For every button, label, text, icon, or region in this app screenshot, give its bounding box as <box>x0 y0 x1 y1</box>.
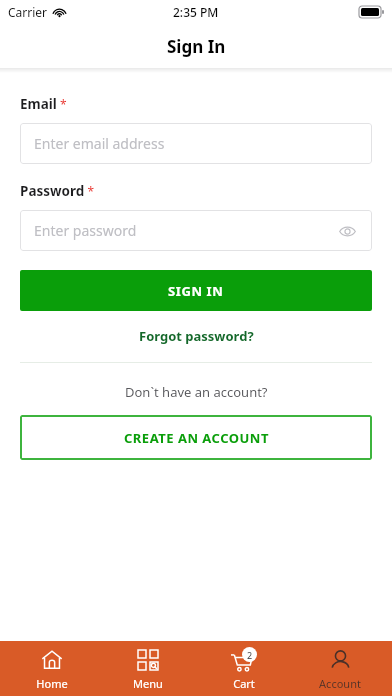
button[interactable]: SIGN IN <box>20 270 372 311</box>
button[interactable]: 2 <box>200 641 288 696</box>
staticText: 2:35 PM <box>173 4 219 20</box>
staticText: Home <box>36 676 68 691</box>
staticText: SIGN IN <box>168 282 224 300</box>
button[interactable]: Show password <box>336 220 358 242</box>
staticText: Cart <box>233 676 255 691</box>
button[interactable]: Enter email address <box>20 123 372 164</box>
button[interactable]: Account <box>296 641 384 696</box>
staticText: Sign In <box>167 35 226 58</box>
button[interactable]: Enter password <box>20 210 372 251</box>
staticText: Don`t have an account? <box>125 383 268 401</box>
button[interactable]: Home <box>8 641 96 696</box>
staticText: Account <box>319 676 361 691</box>
staticText: Email * <box>20 95 67 113</box>
staticText: Menu <box>133 676 163 691</box>
staticText: Enter password <box>34 221 137 240</box>
button[interactable]: Menu <box>104 641 192 696</box>
staticText: Forgot password? <box>139 327 254 345</box>
staticText: Password * <box>20 182 95 200</box>
button[interactable]: CREATE AN ACCOUNT <box>20 415 372 460</box>
button[interactable]: Forgot password? <box>20 327 372 345</box>
staticText: 2 <box>247 649 253 661</box>
staticText: Carrier <box>8 4 48 20</box>
staticText: Enter email address <box>34 134 165 153</box>
staticText: CREATE AN ACCOUNT <box>124 429 269 447</box>
